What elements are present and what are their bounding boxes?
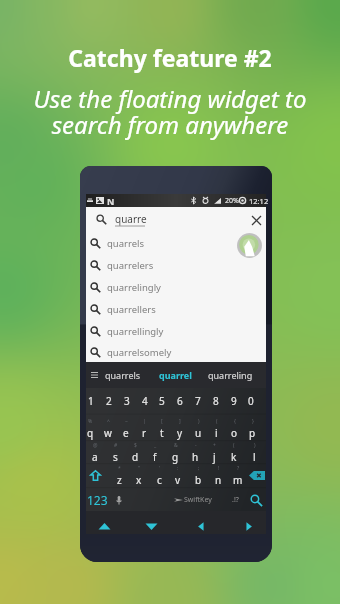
button[interactable]: Voice input <box>110 488 128 512</box>
button[interactable]: @ <box>85 441 105 464</box>
button[interactable]: ~ <box>117 415 135 442</box>
button[interactable]: Space <box>132 488 254 512</box>
staticText: f <box>153 450 157 464</box>
button[interactable]: | <box>135 415 153 442</box>
button[interactable]: & <box>165 441 185 464</box>
staticText: l <box>253 450 256 464</box>
staticText: 7 <box>195 394 201 408</box>
button[interactable]: Clear search <box>246 210 266 230</box>
staticText: | <box>143 418 146 425</box>
button[interactable]: 8 <box>207 388 225 414</box>
button[interactable]: " <box>129 464 149 487</box>
button[interactable]: } <box>243 415 261 442</box>
button[interactable]: - <box>185 441 205 464</box>
button[interactable]: { <box>225 415 243 442</box>
button[interactable]: 4 <box>136 388 154 414</box>
button[interactable]: # <box>105 441 125 464</box>
staticText: quarrelingly <box>107 281 161 294</box>
button[interactable]: Back <box>190 515 212 537</box>
staticText: t <box>160 426 164 440</box>
staticText: ) <box>254 442 256 449</box>
staticText: { <box>234 418 236 425</box>
staticText: n <box>215 473 222 487</box>
button[interactable]: ^ <box>99 415 117 442</box>
button[interactable]: 2 <box>100 388 118 414</box>
button[interactable]: Backspace <box>244 464 270 487</box>
staticText: c <box>157 473 162 487</box>
button[interactable]: 0 <box>242 388 260 414</box>
staticText: e <box>123 426 129 440</box>
button[interactable]: ? <box>228 464 248 487</box>
staticText: & <box>174 442 178 449</box>
staticText: ? <box>237 465 240 472</box>
button[interactable]: quarrellers <box>86 298 266 320</box>
staticText: _ <box>154 442 157 449</box>
staticText: % <box>88 418 93 425</box>
staticText: u <box>195 426 202 440</box>
button[interactable]: quarrelers <box>86 254 266 276</box>
staticText: [ <box>161 418 163 425</box>
button[interactable]: Search <box>244 488 268 512</box>
staticText: } <box>252 418 254 425</box>
button[interactable]: $ <box>125 441 145 464</box>
button[interactable]: quarrel <box>157 369 194 381</box>
staticText: ' <box>159 465 161 472</box>
button[interactable]: 5 <box>153 388 171 414</box>
staticText: $ <box>134 442 137 449</box>
staticText: o <box>231 426 238 440</box>
button[interactable]: Scroll down <box>140 515 162 537</box>
button[interactable]: quarreling <box>206 369 255 381</box>
button[interactable]: : <box>168 464 188 487</box>
button[interactable]: quarrels <box>86 232 266 254</box>
button[interactable]: ) <box>189 415 207 442</box>
staticText: 2 <box>106 394 112 408</box>
button[interactable]: ] <box>171 415 189 442</box>
staticText: a <box>92 450 98 464</box>
button[interactable]: ' <box>149 464 169 487</box>
staticText: SwiftKey <box>184 495 212 505</box>
button[interactable]: Menu <box>88 369 100 381</box>
button[interactable]: quarrelingly <box>86 276 266 298</box>
staticText: N <box>107 195 115 207</box>
button[interactable]: 7 <box>189 388 207 414</box>
button[interactable]: 3 <box>118 388 136 414</box>
button[interactable]: ) <box>244 441 264 464</box>
button[interactable]: 6 <box>171 388 189 414</box>
button[interactable]: % <box>81 415 99 442</box>
button[interactable]: quarrellingly <box>86 320 266 342</box>
staticText: quarrel <box>159 369 192 381</box>
staticText: 12:12 <box>249 196 269 206</box>
button[interactable]: quarrels <box>103 369 143 381</box>
staticText: 3 <box>124 394 130 408</box>
button[interactable]: ! <box>208 464 228 487</box>
button[interactable]: * <box>109 464 129 487</box>
staticText: s <box>113 450 118 464</box>
staticText: ! <box>218 465 220 472</box>
button[interactable]: ; <box>188 464 208 487</box>
button[interactable]: 1 <box>82 388 100 414</box>
button[interactable]: [ <box>153 415 171 442</box>
staticText: quarrels <box>105 369 141 381</box>
staticText: 0 <box>248 394 254 408</box>
staticText: 123 <box>87 492 108 508</box>
staticText: d <box>132 450 139 464</box>
button[interactable]: Floating search widget <box>237 233 262 258</box>
staticText: * <box>118 465 121 472</box>
button[interactable]: Forward <box>237 515 259 537</box>
button[interactable]: ( <box>207 415 225 442</box>
button[interactable]: .!? <box>226 488 244 512</box>
staticText: 6 <box>177 394 183 408</box>
button[interactable]: quarrelsomely <box>86 342 266 362</box>
button[interactable]: Scroll up <box>93 515 115 537</box>
staticText: i <box>215 426 218 440</box>
staticText: - <box>195 442 197 449</box>
staticText: .!? <box>232 495 239 505</box>
button[interactable]: 123 <box>86 488 108 512</box>
staticText: + <box>213 442 216 449</box>
button[interactable]: Shift <box>82 464 108 487</box>
button[interactable]: _ <box>145 441 165 464</box>
button[interactable]: ( <box>224 441 244 464</box>
button[interactable]: + <box>204 441 224 464</box>
button[interactable]: 9 <box>225 388 243 414</box>
staticText: quarrelers <box>107 259 154 272</box>
